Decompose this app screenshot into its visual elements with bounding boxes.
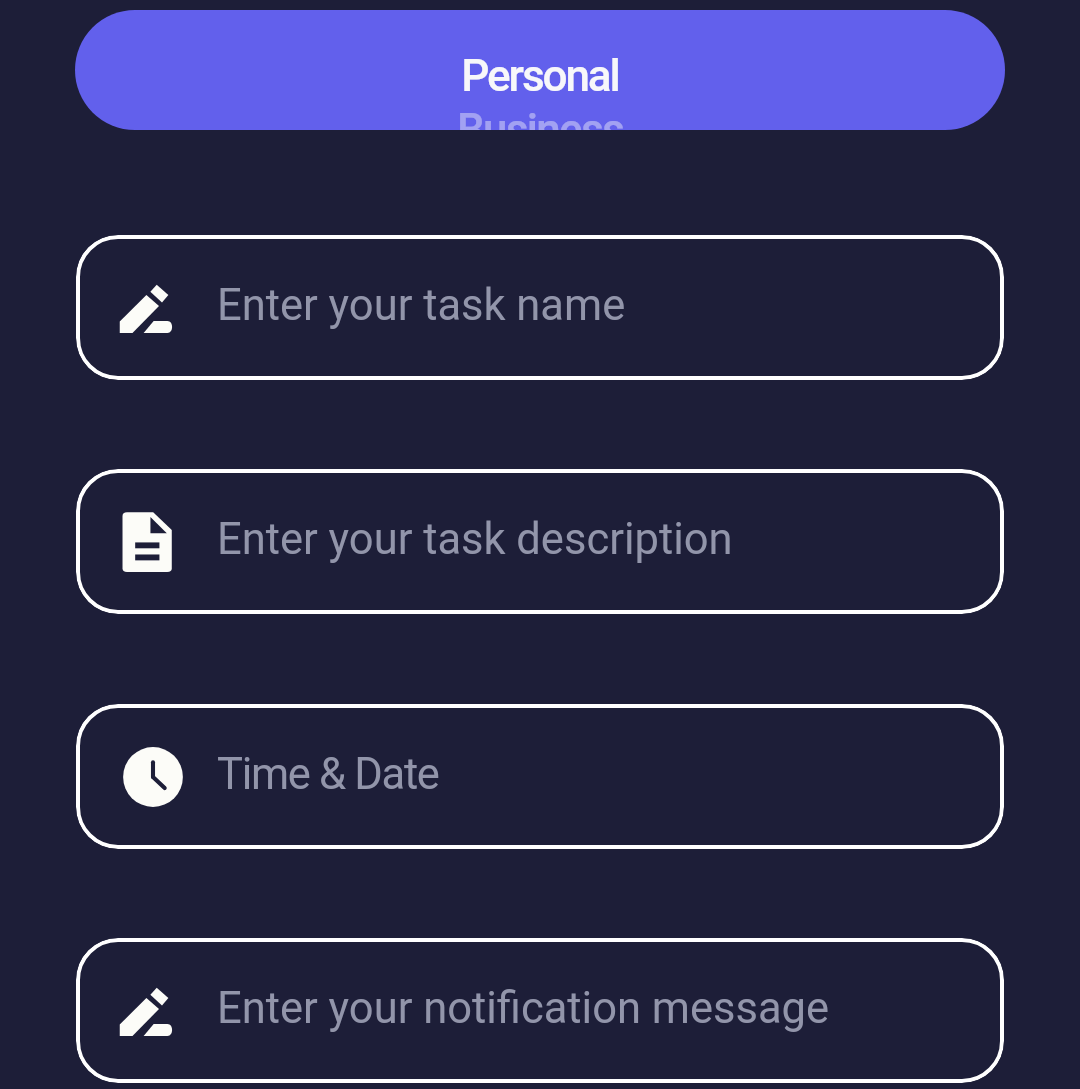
staticText: Enter your notification message <box>217 983 830 1034</box>
staticText: Time & Date <box>217 749 439 800</box>
button[interactable]: Personal <box>75 10 1005 130</box>
other: Pick time and date <box>117 747 177 807</box>
staticText: Enter your task description <box>217 514 733 565</box>
other: Task description <box>117 512 177 572</box>
button[interactable]: Edit notification message <box>76 938 1004 1083</box>
staticText: Business <box>75 104 1005 130</box>
staticText: Personal <box>75 50 1005 102</box>
button[interactable]: Edit task name <box>76 235 1004 380</box>
other: Edit task name <box>117 278 177 338</box>
button[interactable]: Task description <box>76 469 1004 614</box>
button[interactable]: Pick time and date <box>76 704 1004 849</box>
staticText: Enter your task name <box>217 280 626 331</box>
other: Edit notification message <box>117 981 177 1041</box>
